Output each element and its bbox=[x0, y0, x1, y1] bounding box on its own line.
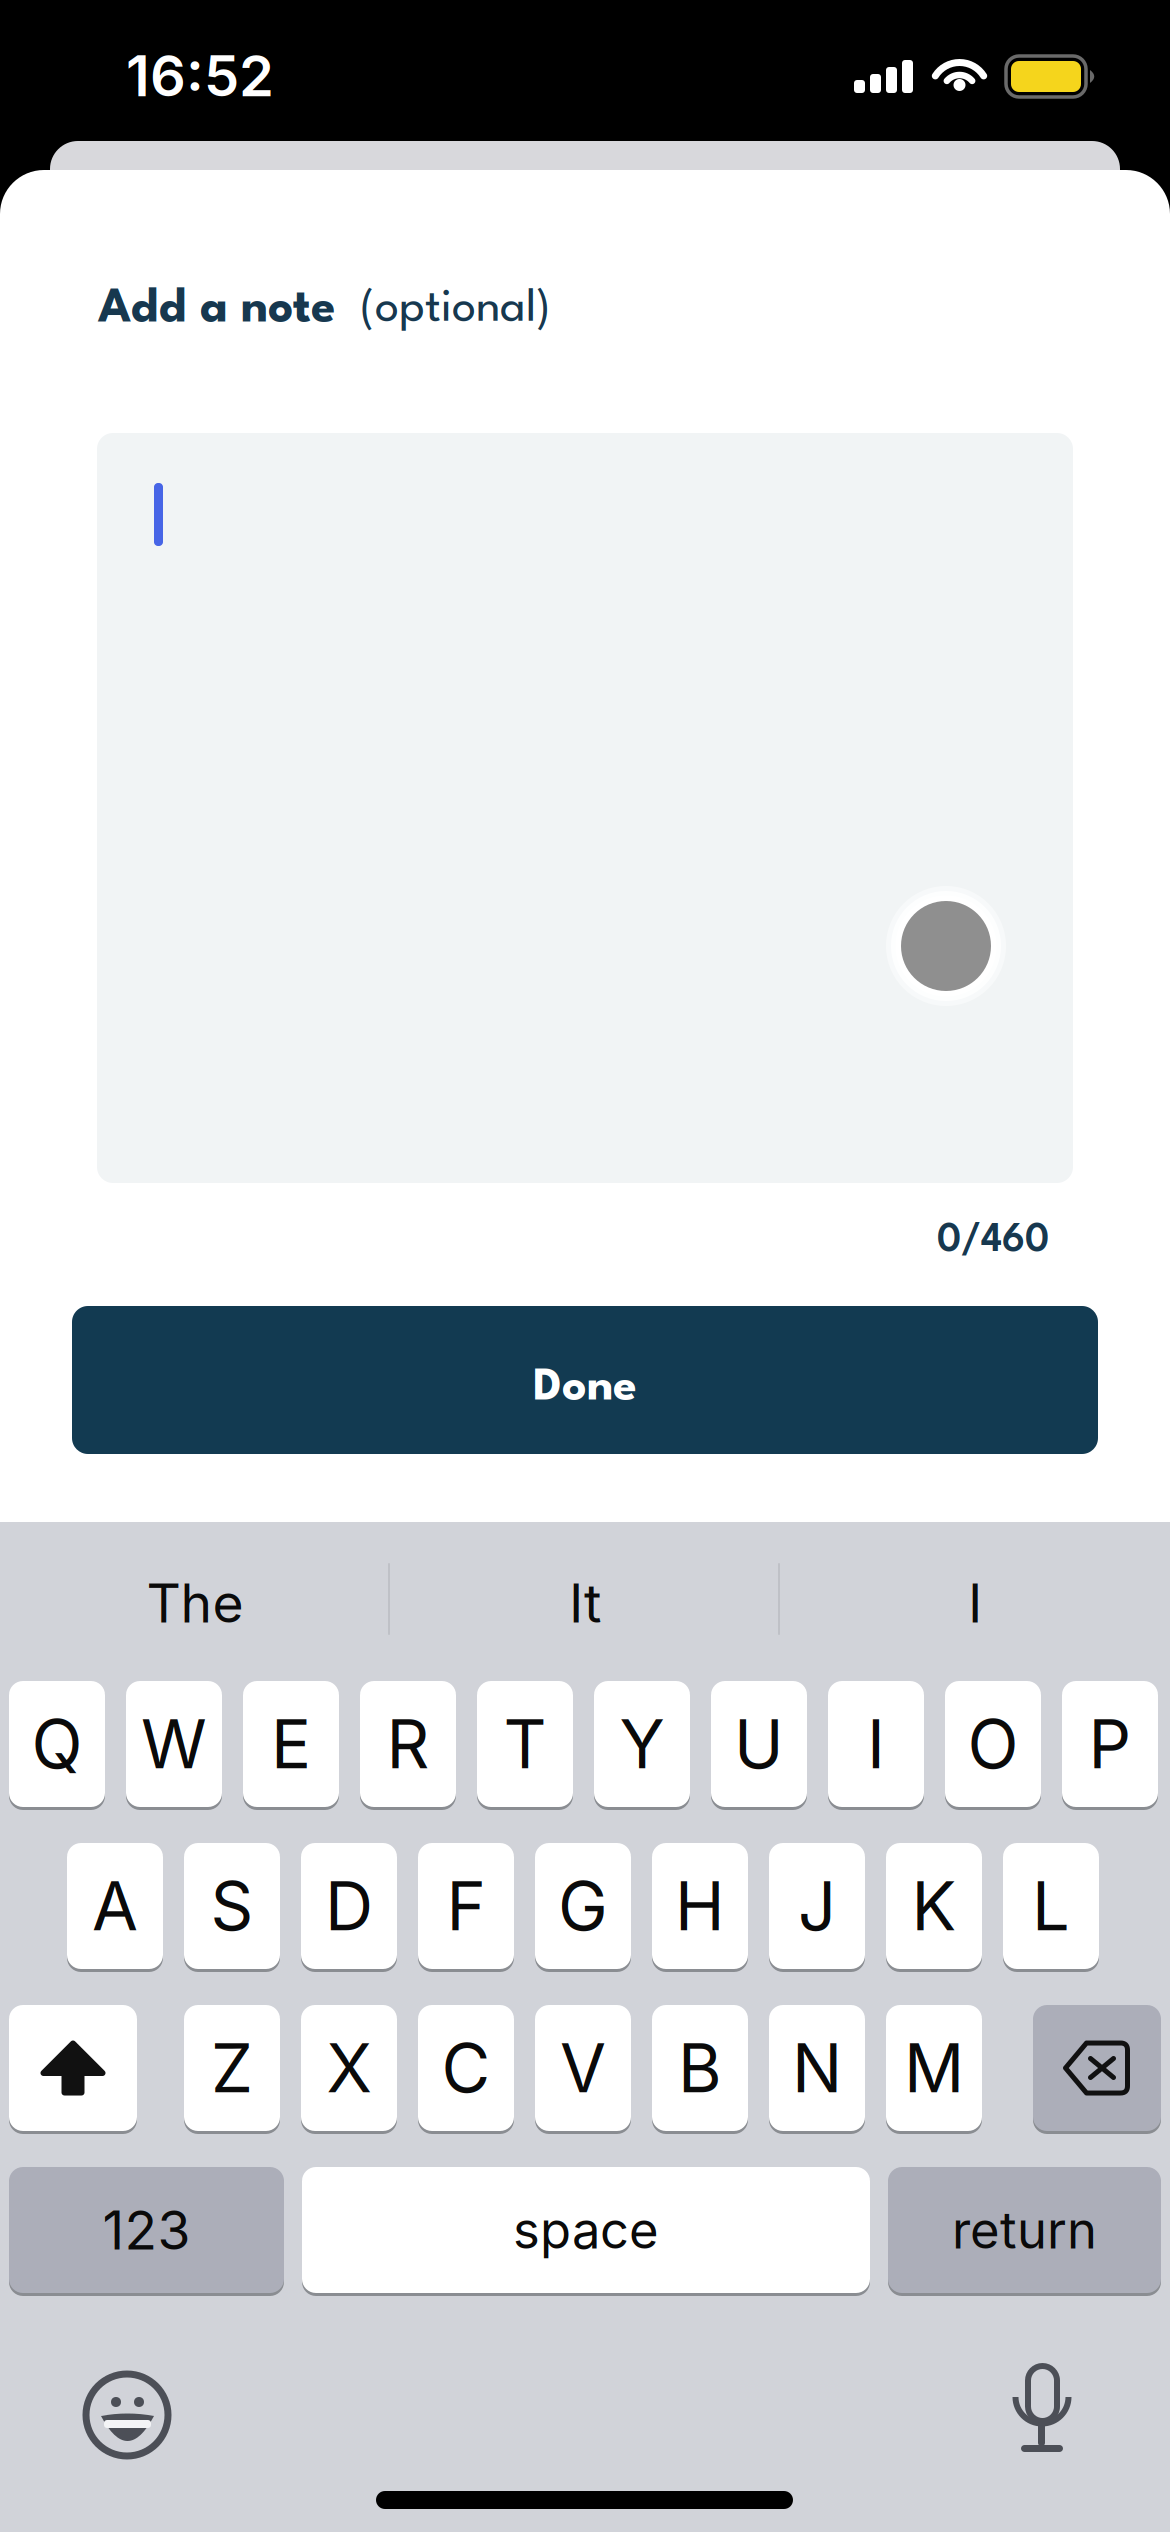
button[interactable]: O bbox=[945, 1681, 1041, 1810]
button[interactable]: W bbox=[126, 1681, 222, 1810]
button[interactable]: S bbox=[184, 1843, 280, 1972]
button[interactable]: The bbox=[0, 1543, 390, 1663]
button[interactable]: It bbox=[390, 1543, 780, 1663]
button[interactable]: Shift bbox=[9, 2005, 137, 2134]
staticText: N bbox=[792, 2028, 842, 2108]
button[interactable]: 123 bbox=[9, 2167, 284, 2296]
button[interactable]: F bbox=[418, 1843, 514, 1972]
staticText: Q bbox=[31, 1704, 82, 1784]
button[interactable]: Q bbox=[9, 1681, 105, 1810]
staticText: W bbox=[141, 1704, 207, 1784]
staticText: I bbox=[968, 1571, 982, 1635]
staticText: Y bbox=[619, 1704, 664, 1784]
staticText: H bbox=[675, 1866, 725, 1946]
staticText: M bbox=[904, 2028, 964, 2108]
button[interactable]: Delete bbox=[1033, 2005, 1161, 2134]
staticText: The bbox=[146, 1571, 243, 1635]
button[interactable]: return bbox=[888, 2167, 1161, 2296]
button[interactable]: J bbox=[769, 1843, 865, 1972]
button[interactable]: N bbox=[769, 2005, 865, 2134]
staticText: 123 bbox=[102, 2198, 190, 2262]
staticText: E bbox=[271, 1704, 311, 1784]
button[interactable]: L bbox=[1003, 1843, 1099, 1972]
button[interactable]: A bbox=[67, 1843, 163, 1972]
button[interactable]: M bbox=[886, 2005, 982, 2134]
button[interactable]: G bbox=[535, 1843, 631, 1972]
staticText: K bbox=[911, 1866, 956, 1946]
staticText: O bbox=[967, 1704, 1018, 1784]
staticText: It bbox=[569, 1571, 601, 1635]
button[interactable]: T bbox=[477, 1681, 573, 1810]
button[interactable]: Dictation bbox=[1010, 2366, 1074, 2456]
button[interactable]: P bbox=[1062, 1681, 1158, 1810]
staticText: U bbox=[734, 1704, 784, 1784]
staticText: T bbox=[503, 1704, 546, 1784]
button[interactable]: K bbox=[886, 1843, 982, 1972]
staticText: V bbox=[560, 2028, 606, 2108]
button[interactable]: D bbox=[301, 1843, 397, 1972]
button[interactable]: Done bbox=[72, 1306, 1098, 1454]
staticText: A bbox=[92, 1866, 138, 1946]
staticText: space bbox=[513, 2199, 659, 2261]
button[interactable]: I bbox=[780, 1543, 1170, 1663]
staticText: G bbox=[558, 1866, 608, 1946]
staticText: 16:52 bbox=[126, 42, 274, 110]
button[interactable]: C bbox=[418, 2005, 514, 2134]
staticText: J bbox=[798, 1866, 836, 1946]
staticText: P bbox=[1088, 1704, 1131, 1784]
staticText: L bbox=[1032, 1866, 1070, 1946]
staticText: Add a note bbox=[98, 287, 336, 332]
staticText: R bbox=[386, 1704, 429, 1784]
button[interactable]: Note text field bbox=[97, 433, 1073, 1183]
staticText: Done bbox=[533, 1366, 637, 1410]
button[interactable]: Z bbox=[184, 2005, 280, 2134]
button[interactable]: X bbox=[301, 2005, 397, 2134]
button[interactable]: Y bbox=[594, 1681, 690, 1810]
button[interactable]: space bbox=[302, 2167, 870, 2296]
staticText: 0/460 bbox=[937, 1222, 1049, 1260]
staticText: S bbox=[210, 1866, 253, 1946]
button[interactable]: R bbox=[360, 1681, 456, 1810]
staticText: Z bbox=[211, 2028, 253, 2108]
button[interactable]: I bbox=[828, 1681, 924, 1810]
button[interactable]: U bbox=[711, 1681, 807, 1810]
staticText: D bbox=[325, 1866, 373, 1946]
staticText: (optional) bbox=[360, 287, 551, 331]
staticText: return bbox=[952, 2199, 1097, 2261]
staticText: X bbox=[326, 2028, 371, 2108]
button[interactable]: Emoji bbox=[86, 2374, 170, 2458]
staticText: C bbox=[441, 2028, 490, 2108]
button[interactable]: V bbox=[535, 2005, 631, 2134]
staticText: I bbox=[867, 1704, 885, 1784]
button[interactable]: H bbox=[652, 1843, 748, 1972]
button[interactable]: B bbox=[652, 2005, 748, 2134]
button[interactable]: E bbox=[243, 1681, 339, 1810]
staticText: B bbox=[678, 2028, 722, 2108]
staticText: F bbox=[446, 1866, 485, 1946]
